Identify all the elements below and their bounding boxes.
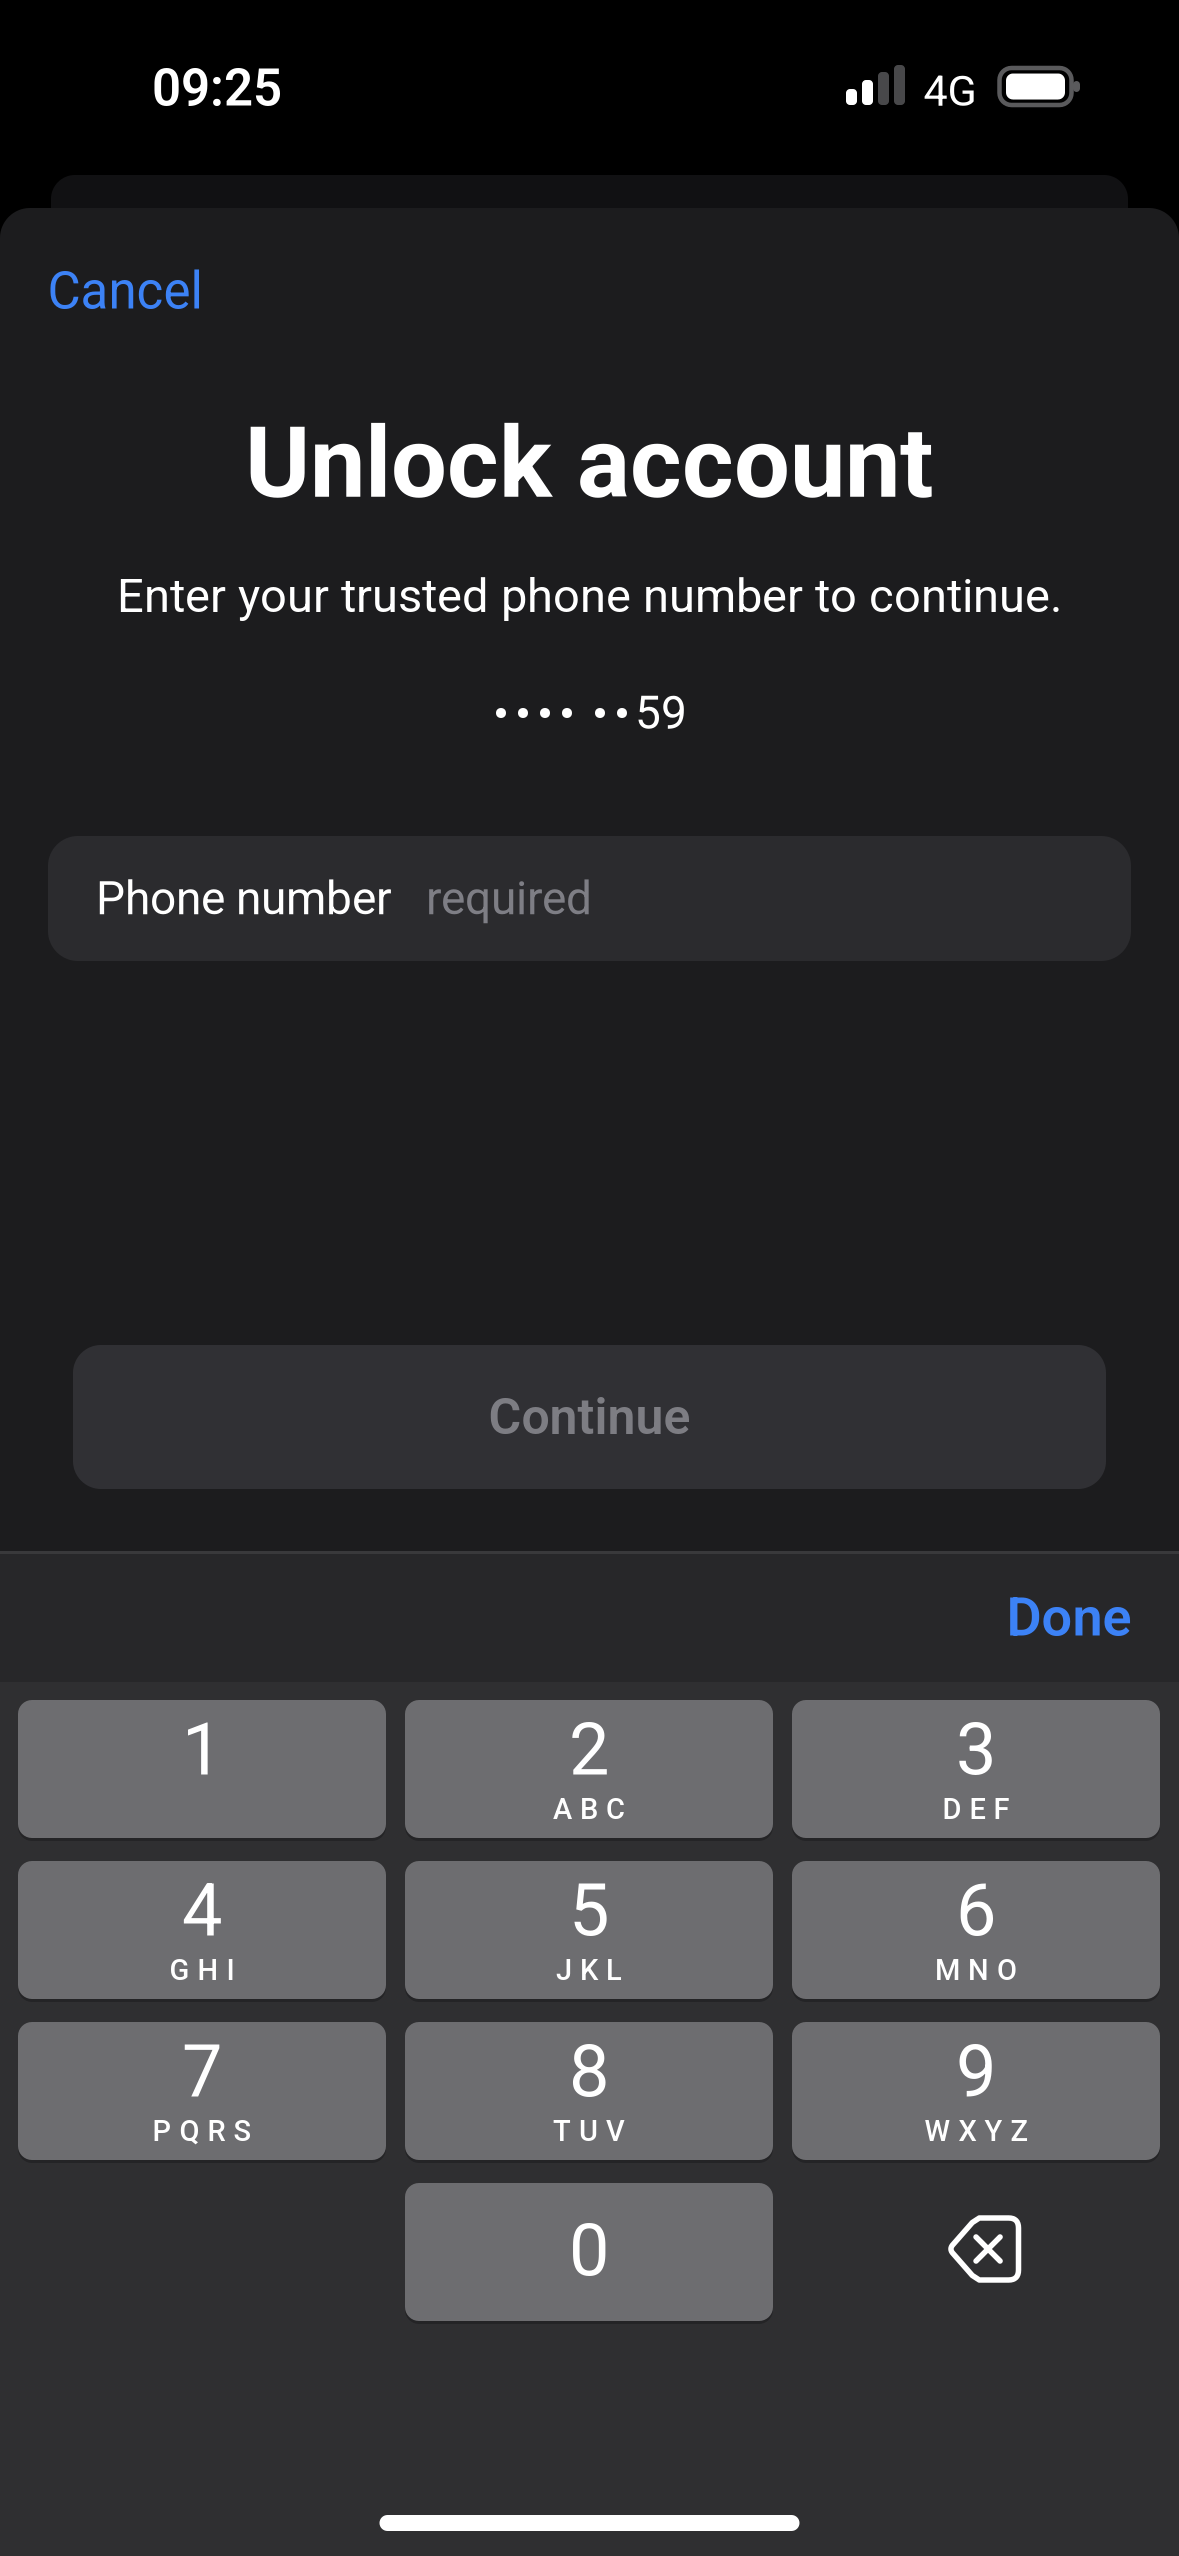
button[interactable]: 5 xyxy=(405,1861,773,1999)
button[interactable]: Continue xyxy=(73,1345,1106,1489)
staticText: WXYZ xyxy=(924,2114,1027,2148)
staticText: 8 xyxy=(569,2030,609,2114)
staticText: 0 xyxy=(569,2209,609,2293)
staticText: Phone number xyxy=(96,871,392,925)
staticText: 2 xyxy=(569,1708,609,1792)
staticText: TUV xyxy=(553,2114,625,2148)
button[interactable]: 6 xyxy=(792,1861,1160,1999)
button[interactable]: 8 xyxy=(405,2022,773,2160)
staticText: JKL xyxy=(556,1953,622,1987)
button[interactable]: Cancel xyxy=(47,261,202,321)
button[interactable]: 2 xyxy=(405,1700,773,1838)
button[interactable]: 1 xyxy=(18,1700,386,1838)
button[interactable]: 9 xyxy=(792,2022,1160,2160)
staticText: 4 xyxy=(182,1869,222,1953)
staticText: 7 xyxy=(182,2030,222,2114)
staticText: 4G xyxy=(923,66,976,116)
staticText: 3 xyxy=(956,1708,996,1792)
button[interactable]: 0 xyxy=(405,2183,773,2321)
staticText: GHI xyxy=(169,1953,234,1987)
staticText: Unlock account xyxy=(245,405,934,521)
staticText: Done xyxy=(1006,1585,1131,1649)
staticText: Cancel xyxy=(47,261,202,321)
staticText: 9 xyxy=(956,2030,996,2114)
button[interactable]: 4 xyxy=(18,1861,386,1999)
staticText: ABC xyxy=(553,1792,625,1826)
staticText: PQRS xyxy=(152,2114,251,2148)
staticText: 6 xyxy=(956,1869,996,1953)
button[interactable]: Phone number xyxy=(48,836,1131,961)
staticText: MNO xyxy=(935,1953,1017,1987)
staticText: 1 xyxy=(182,1708,222,1792)
staticText: Enter your trusted phone number to conti… xyxy=(117,568,1062,624)
button[interactable]: Done xyxy=(1006,1585,1131,1649)
button[interactable]: Delete xyxy=(948,2218,1018,2280)
button[interactable]: 3 xyxy=(792,1700,1160,1838)
staticText: 59 xyxy=(635,686,687,740)
staticText: Continue xyxy=(488,1388,690,1446)
staticText: required xyxy=(426,871,592,925)
staticText: DEF xyxy=(942,1792,1009,1826)
staticText: 5 xyxy=(569,1869,609,1953)
button[interactable]: 7 xyxy=(18,2022,386,2160)
staticText: 09:25 xyxy=(152,58,282,118)
